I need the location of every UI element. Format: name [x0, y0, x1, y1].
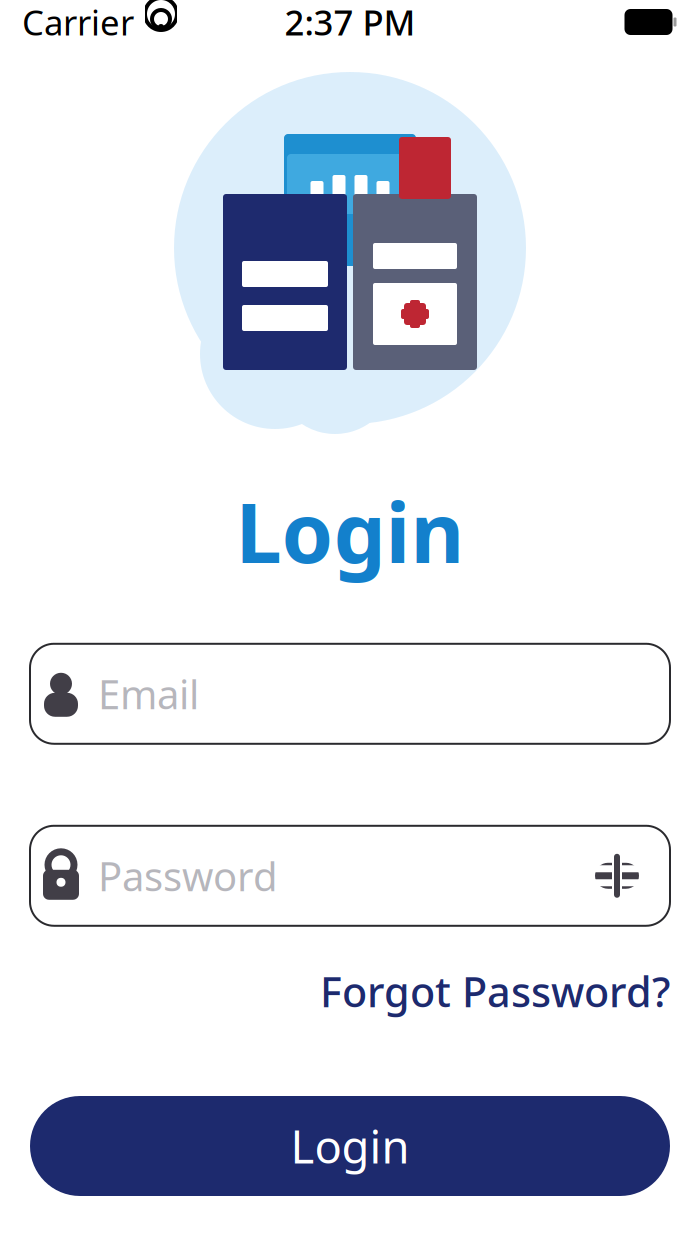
- staticText: Email: [98, 667, 199, 720]
- button[interactable]: Login: [30, 1096, 670, 1196]
- staticText: Carrier: [22, 0, 134, 45]
- button[interactable]: Forgot Password?: [320, 956, 670, 1027]
- button[interactable]: Email: [30, 644, 670, 744]
- staticText: Password: [98, 849, 278, 902]
- staticText: Login: [235, 476, 464, 586]
- staticText: Login: [290, 1116, 409, 1176]
- staticText: 2:37 PM: [284, 0, 415, 45]
- button[interactable]: Password: [30, 826, 670, 926]
- staticText: Forgot Password?: [320, 964, 670, 1019]
